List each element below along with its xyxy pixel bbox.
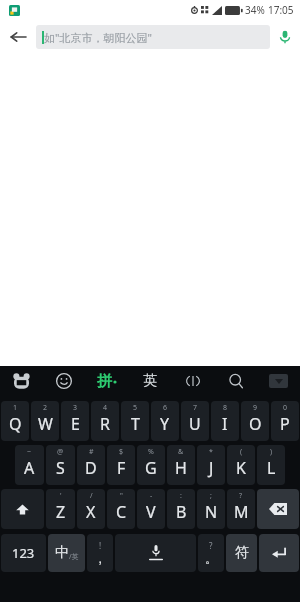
staticText: L <box>267 457 276 479</box>
button[interactable]: 5 <box>121 401 149 441</box>
button[interactable]: 9 <box>241 401 269 441</box>
button[interactable]: ? <box>227 489 255 529</box>
staticText: " <box>120 491 123 501</box>
button[interactable]: ( <box>227 445 255 485</box>
staticText: I <box>222 413 228 435</box>
button[interactable]: 中 <box>48 534 85 572</box>
staticText: E <box>71 413 80 435</box>
staticText: ? <box>209 540 213 551</box>
staticText: N <box>205 501 218 523</box>
staticText: H <box>175 457 187 479</box>
staticText: @ <box>57 447 64 457</box>
staticText: M <box>234 501 249 523</box>
staticText: 8 <box>223 403 228 413</box>
staticText: A <box>24 457 35 479</box>
button[interactable]: 6 <box>151 401 179 441</box>
staticText: * <box>209 447 213 457</box>
staticText: 34% <box>245 3 265 17</box>
staticText: ( <box>240 447 243 457</box>
staticText: K <box>236 457 246 479</box>
button[interactable]: ' <box>46 489 75 529</box>
staticText: ' <box>60 491 62 501</box>
button[interactable]: - <box>137 489 165 529</box>
staticText: J <box>209 457 214 479</box>
button[interactable]: Hide keyboard <box>257 366 300 396</box>
button[interactable]: # <box>77 445 105 485</box>
button[interactable]: Backspace <box>257 489 299 529</box>
staticText: 1 <box>13 403 18 413</box>
staticText: 3 <box>73 403 78 413</box>
button[interactable]: Search <box>214 366 257 396</box>
staticText: P <box>280 413 290 435</box>
button[interactable]: * <box>197 445 225 485</box>
button[interactable]: ~ <box>15 445 44 485</box>
staticText: ， <box>94 551 106 566</box>
button[interactable]: Emoji <box>42 366 85 396</box>
button[interactable]: Space <box>115 534 196 572</box>
button[interactable]: Sticker <box>0 366 42 396</box>
staticText: D <box>85 457 97 479</box>
button[interactable]: / <box>77 489 105 529</box>
button[interactable]: ! <box>87 534 113 572</box>
staticText: 英 <box>143 372 157 390</box>
button[interactable]: 7 <box>181 401 209 441</box>
button[interactable]: 符 <box>226 534 257 572</box>
staticText: ) <box>270 447 273 457</box>
button[interactable]: 如"北京市，朝阳公园" <box>36 25 270 49</box>
staticText: V <box>146 501 156 523</box>
staticText: 5 <box>133 403 138 413</box>
staticText: 7 <box>193 403 198 413</box>
staticText: 。 <box>205 551 217 566</box>
button[interactable]: ) <box>257 445 285 485</box>
button[interactable]: 2 <box>31 401 59 441</box>
button[interactable]: $ <box>107 445 135 485</box>
staticText: S <box>56 457 65 479</box>
staticText: ; <box>210 491 212 501</box>
button[interactable]: ; <box>197 489 225 529</box>
staticText: 4 <box>103 403 108 413</box>
staticText: O <box>249 413 262 435</box>
button[interactable]: Layout <box>171 366 214 396</box>
staticText: 拼 <box>97 372 112 391</box>
staticText: C <box>116 501 127 523</box>
staticText: : <box>180 491 182 501</box>
staticText: Q <box>9 413 22 435</box>
staticText: $ <box>119 447 124 457</box>
button[interactable]: 3 <box>61 401 89 441</box>
button[interactable]: Shift <box>1 489 44 529</box>
staticText: 17:05 <box>268 3 294 17</box>
staticText: W <box>38 413 53 435</box>
staticText: Z <box>56 501 66 523</box>
staticText: G <box>145 457 157 479</box>
button[interactable]: 4 <box>91 401 119 441</box>
button[interactable]: Voice search <box>270 20 300 54</box>
button[interactable]: 8 <box>211 401 239 441</box>
button[interactable]: @ <box>46 445 75 485</box>
staticText: U <box>189 413 201 435</box>
button[interactable]: 拼 <box>85 366 128 396</box>
staticText: 6 <box>163 403 168 413</box>
button[interactable]: Back <box>0 20 36 54</box>
button[interactable]: : <box>167 489 195 529</box>
button[interactable]: 英 <box>128 366 171 396</box>
button[interactable]: " <box>107 489 135 529</box>
staticText: F <box>117 457 126 479</box>
button[interactable]: & <box>167 445 195 485</box>
button[interactable]: 123 <box>1 534 46 572</box>
button[interactable]: 1 <box>1 401 29 441</box>
staticText: % <box>148 447 154 457</box>
button[interactable]: ? <box>198 534 224 572</box>
staticText: X <box>86 501 96 523</box>
staticText: / <box>90 491 93 501</box>
staticText: ? <box>239 491 243 501</box>
staticText: ! <box>99 540 102 551</box>
staticText: 2 <box>43 403 48 413</box>
button[interactable]: 0 <box>271 401 299 441</box>
staticText: 符 <box>235 544 249 562</box>
button[interactable]: Enter <box>259 534 299 572</box>
staticText: 如"北京市，朝阳公园" <box>44 30 152 45</box>
staticText: - <box>150 491 153 501</box>
staticText: 0 <box>283 403 288 413</box>
button[interactable]: % <box>137 445 165 485</box>
staticText: 123 <box>12 544 35 562</box>
